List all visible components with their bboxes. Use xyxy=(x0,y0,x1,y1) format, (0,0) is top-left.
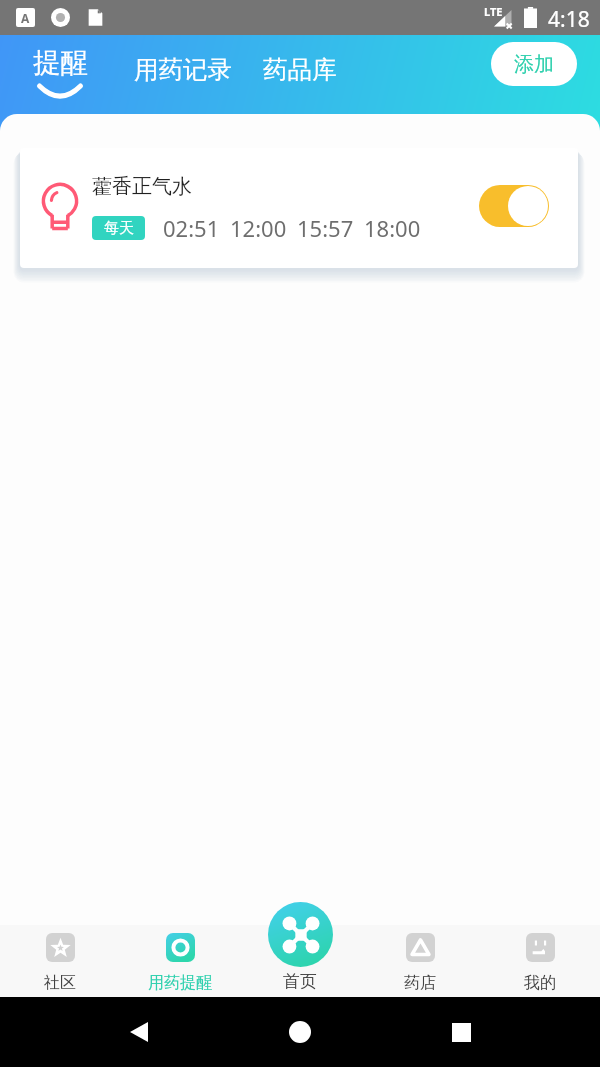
button[interactable]: 药品库 xyxy=(258,51,342,88)
staticText: 首页 xyxy=(283,971,317,992)
staticText: 提醒 xyxy=(33,46,88,81)
button[interactable]: 社区 xyxy=(0,925,120,997)
button[interactable]: 用药提醒 xyxy=(120,925,240,997)
staticText: 社区 xyxy=(44,973,76,993)
staticText: 4:18 xyxy=(548,5,590,34)
staticText: 我的 xyxy=(524,973,556,993)
button[interactable]: Back xyxy=(117,1010,161,1054)
staticText: 药店 xyxy=(404,973,436,993)
button[interactable]: 添加 xyxy=(491,42,577,86)
staticText: LTE xyxy=(484,4,503,19)
button[interactable]: Toggle reminder xyxy=(479,185,549,227)
button[interactable]: 藿香正气水 xyxy=(20,148,578,268)
staticText: 12:00 xyxy=(230,213,287,243)
staticText: A xyxy=(21,10,30,26)
staticText: 15:57 xyxy=(297,213,354,243)
staticText: 每天 xyxy=(104,219,134,238)
button[interactable]: 药店 xyxy=(360,925,480,997)
staticText: 02:51 xyxy=(163,213,220,243)
button[interactable]: Home xyxy=(278,1010,322,1054)
staticText: 添加 xyxy=(514,52,554,77)
staticText: 用药提醒 xyxy=(148,973,212,993)
button[interactable]: 我的 xyxy=(480,925,600,997)
button[interactable]: Recent apps xyxy=(439,1010,483,1054)
staticText: 18:00 xyxy=(364,213,421,243)
button[interactable]: 用药记录 xyxy=(129,51,237,88)
staticText: 藿香正气水 xyxy=(92,174,192,199)
staticText: 药品库 xyxy=(263,54,337,85)
button[interactable]: Home xyxy=(268,902,333,967)
button[interactable]: 提醒 xyxy=(25,46,95,97)
staticText: 用药记录 xyxy=(134,54,232,85)
